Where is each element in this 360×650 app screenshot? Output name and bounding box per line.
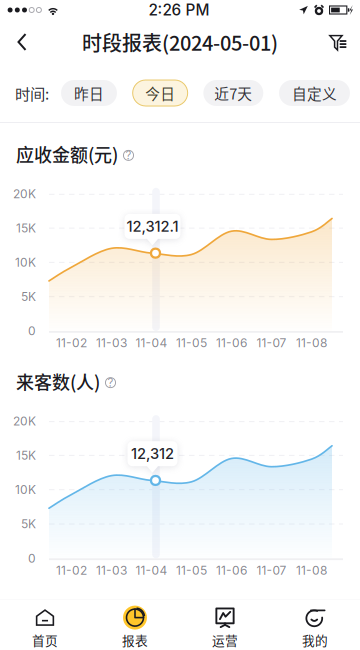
staticText: 2:26 PM	[148, 1, 209, 19]
staticText: 11-07	[256, 336, 286, 350]
staticText: 11-05	[176, 336, 207, 350]
staticText: 15K	[16, 448, 36, 463]
staticText: 10K	[15, 482, 36, 497]
button[interactable]: 首页	[0, 599, 90, 650]
staticText: 时间:	[15, 82, 49, 104]
staticText: 今日	[145, 82, 175, 104]
staticText: 11-02	[56, 336, 87, 350]
button[interactable]: 近7天	[203, 80, 263, 106]
staticText: ?	[125, 148, 131, 162]
staticText: 应收金额(元)	[16, 141, 118, 167]
staticText: 来客数(人)	[16, 368, 100, 394]
button[interactable]: 自定义	[279, 80, 350, 106]
staticText: 11-08	[296, 563, 327, 577]
staticText: 20K	[13, 186, 36, 201]
button[interactable]: 我的	[270, 599, 360, 650]
staticText: 11-08	[296, 336, 327, 350]
staticText: 5K	[21, 289, 36, 304]
button[interactable]: Back	[0, 20, 44, 64]
staticText: 12,312.1	[126, 217, 178, 235]
staticText: 5K	[21, 517, 36, 531]
button[interactable]: 昨日	[61, 80, 117, 106]
staticText: 首页	[32, 631, 58, 649]
button[interactable]: 运营	[180, 599, 270, 650]
staticText: 11-06	[216, 563, 247, 577]
staticText: 11-03	[96, 563, 127, 577]
staticText: 0	[28, 551, 36, 565]
staticText: 0	[28, 324, 36, 338]
staticText: 昨日	[74, 82, 104, 104]
staticText: 11-05	[176, 563, 207, 577]
staticText: 自定义	[292, 82, 337, 104]
staticText: 报表	[122, 631, 148, 649]
staticText: 11-07	[256, 563, 286, 577]
staticText: 近7天	[214, 82, 252, 104]
staticText: 11-04	[135, 336, 167, 350]
staticText: 11-02	[56, 563, 87, 577]
staticText: 12,312	[131, 445, 174, 462]
button[interactable]: Filter	[316, 20, 360, 64]
staticText: ?	[107, 376, 113, 389]
staticText: 时段报表(2024-05-01)	[82, 27, 278, 56]
staticText: 11-03	[96, 336, 127, 350]
staticText: 15K	[16, 221, 36, 235]
button[interactable]: 今日	[133, 80, 188, 106]
staticText: 我的	[302, 631, 328, 649]
staticText: 10K	[15, 255, 36, 270]
staticText: 11-04	[135, 563, 167, 577]
staticText: 20K	[13, 414, 36, 428]
button[interactable]: 报表	[90, 599, 180, 650]
staticText: 11-06	[216, 336, 247, 350]
staticText: 运营	[212, 631, 238, 649]
